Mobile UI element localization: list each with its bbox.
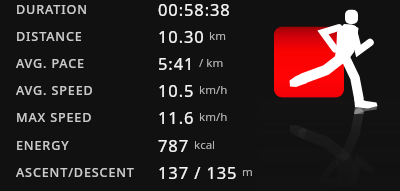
button[interactable]: MAX SPEED [0,104,250,131]
staticText: km [209,28,226,44]
staticText: km/h [199,109,228,125]
staticText: AVG. PACE [16,55,85,72]
button[interactable]: DISTANCE [0,23,250,50]
staticText: AVG. SPEED [16,82,94,99]
staticText: 787 [158,134,190,156]
staticText: kcal [194,137,216,153]
button[interactable]: ENERGY [0,132,250,159]
staticText: DURATION [16,1,88,18]
staticText: 5:41 [158,52,195,74]
other: Running activity [0,0,400,191]
staticText: 11.6 [158,106,195,128]
staticText: MAX SPEED [16,109,93,126]
staticText: 137 / 135 [158,161,238,183]
staticText: 10.5 [158,79,195,101]
staticText: ENERGY [16,137,70,154]
staticText: DISTANCE [16,28,83,45]
staticText: m [242,164,253,180]
button[interactable]: AVG. SPEED [0,77,250,104]
staticText: 10.30 [158,25,205,47]
button[interactable]: AVG. PACE [0,50,250,77]
staticText: ASCENT/DESCENT [16,164,135,181]
staticText: 00:58:38 [158,0,231,20]
staticText: / km [199,55,224,71]
button[interactable]: DURATION [0,0,250,23]
staticText: km/h [199,82,228,98]
button[interactable]: ASCENT/DESCENT [0,159,250,186]
